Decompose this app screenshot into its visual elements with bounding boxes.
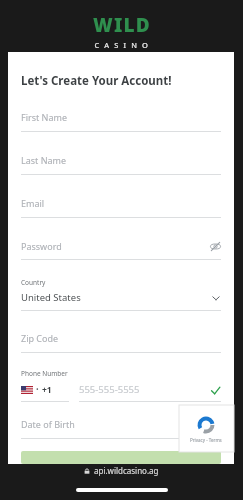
staticText: api.wildcasino.ag: [94, 465, 159, 476]
button[interactable]: Email: [8, 197, 234, 218]
button[interactable]: [21, 451, 221, 464]
staticText: Phone Number: [21, 369, 68, 378]
button[interactable]: Last Name: [8, 154, 234, 175]
staticText: United States: [21, 291, 81, 304]
button[interactable]: Show password: [209, 240, 221, 252]
staticText: Date of Birth: [21, 418, 75, 430]
button[interactable]: Password: [8, 240, 234, 260]
staticText: •: [36, 385, 39, 395]
staticText: +1: [42, 384, 52, 396]
staticText: Zip Code: [21, 332, 59, 344]
button[interactable]: •: [21, 384, 73, 396]
staticText: First Name: [21, 111, 67, 123]
button[interactable]: First Name: [8, 111, 234, 132]
button[interactable]: Date of Birth: [8, 418, 234, 439]
staticText: Last Name: [21, 154, 67, 166]
button[interactable]: Country: [8, 278, 234, 311]
button[interactable]: reCAPTCHA privacy and terms: [179, 406, 233, 452]
button[interactable]: 555-555-5555: [79, 383, 209, 396]
staticText: Privacy - Terms: [190, 437, 222, 443]
staticText: Email: [21, 197, 45, 209]
staticText: 555-555-5555: [79, 383, 140, 396]
staticText: Country: [21, 278, 46, 287]
staticText: Password: [21, 240, 62, 252]
staticText: Let's Create Your Account!: [21, 73, 172, 89]
staticText: C A S I N O: [94, 40, 150, 50]
button[interactable]: Zip Code: [8, 332, 234, 353]
staticText: WILD: [93, 12, 151, 38]
